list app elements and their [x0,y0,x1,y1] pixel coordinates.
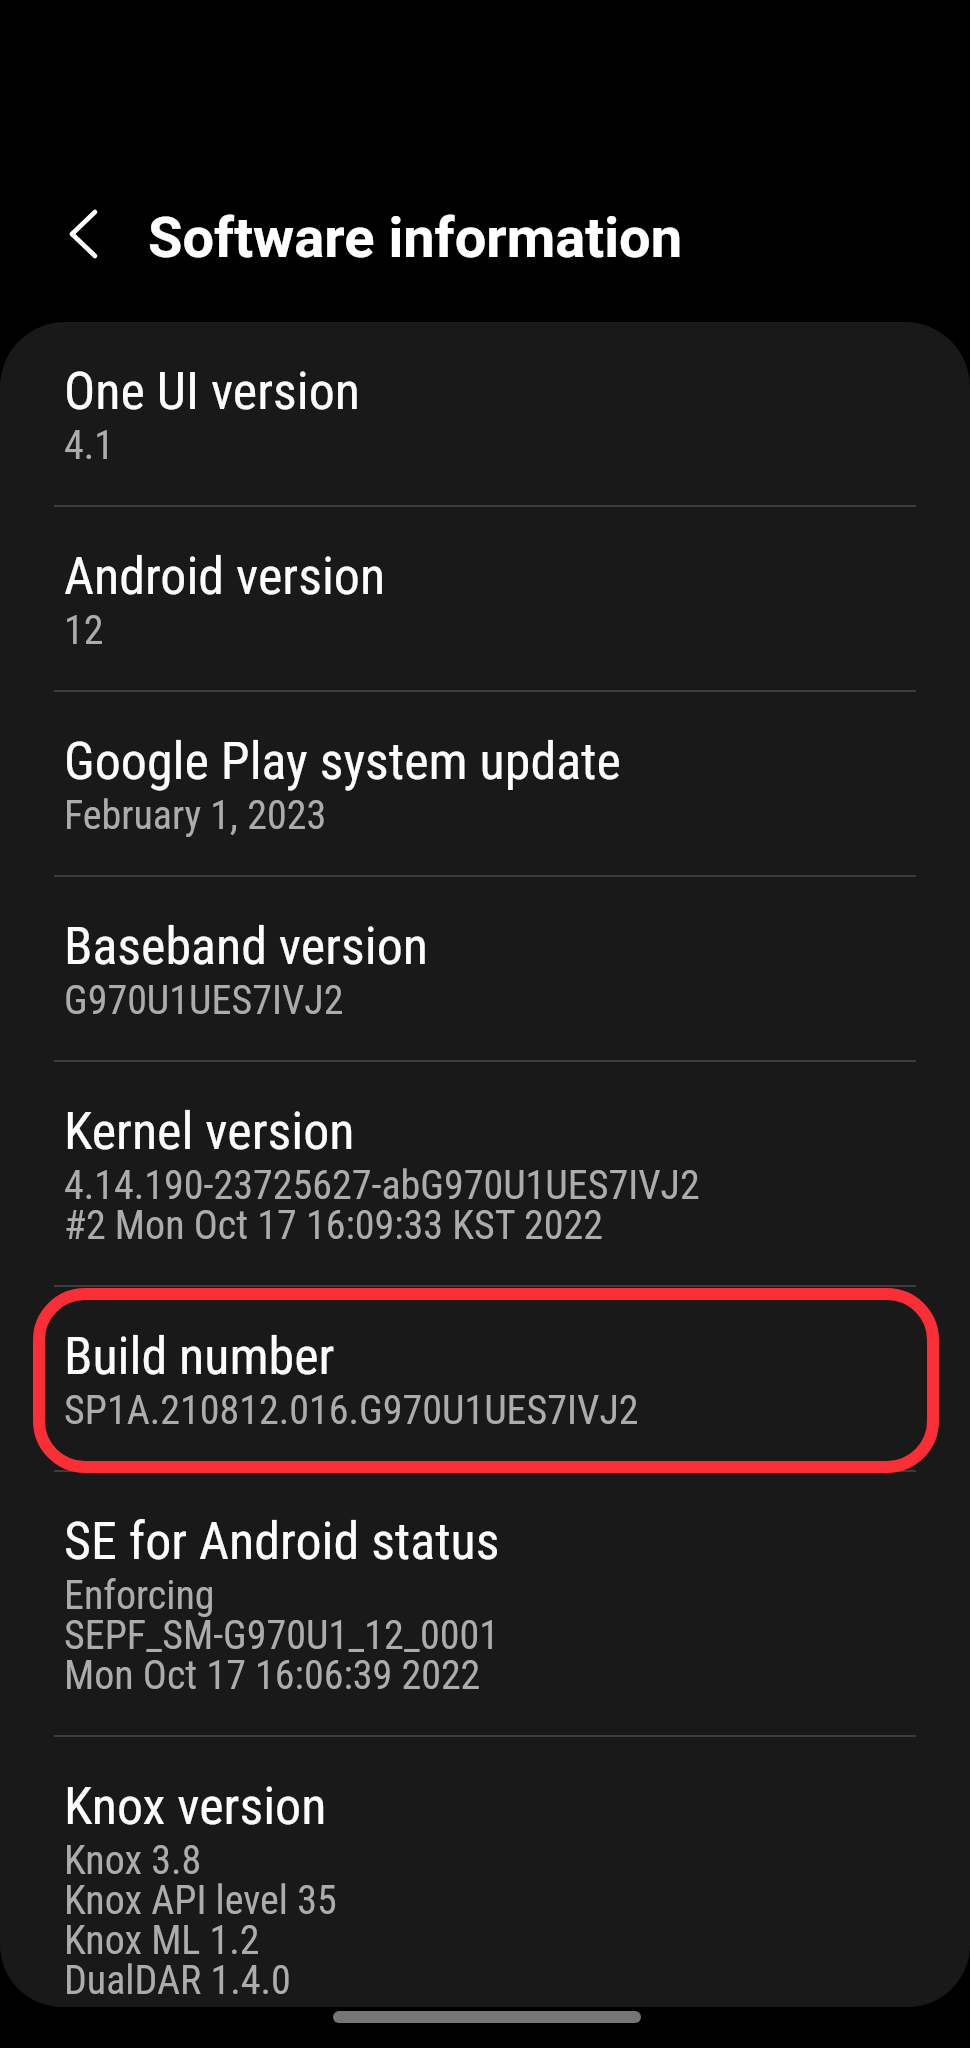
button[interactable]: Navigate up [62,203,126,265]
staticText: #2 Mon Oct 17 16:09:33 KST 2022 [64,1202,603,1249]
button[interactable]: Baseband version [0,877,970,1060]
staticText: 4.14.190-23725627-abG970U1UES7IVJ2 [64,1162,700,1209]
staticText: Baseband version [64,916,428,977]
staticText: G970U1UES7IVJ2 [64,977,344,1024]
button[interactable]: SE for Android status [0,1472,970,1735]
staticText: 4.1 [64,422,115,469]
staticText: One UI version [64,361,360,422]
button[interactable]: Kernel version [0,1062,970,1285]
staticText: Knox version [64,1776,327,1837]
staticText: Kernel version [64,1101,355,1162]
staticText: Enforcing [64,1572,215,1619]
button[interactable]: Google Play system update [0,692,970,875]
staticText: SE for Android status [64,1511,500,1572]
button[interactable]: Android version [0,507,970,690]
staticText: DualDAR 1.4.0 [64,1957,291,2004]
button[interactable]: Knox version [0,1737,970,2007]
staticText: Google Play system update [64,731,621,792]
staticText: Knox ML 1.2 [64,1917,260,1964]
staticText: February 1, 2023 [64,792,327,839]
staticText: Build number [64,1326,335,1387]
staticText: SP1A.210812.016.G970U1UES7IVJ2 [64,1387,639,1434]
staticText: Software information [148,205,683,271]
staticText: Android version [64,546,386,607]
button[interactable]: One UI version [0,322,970,505]
button[interactable]: Build number [0,1287,970,1470]
staticText: Knox 3.8 [64,1837,202,1884]
staticText: 12 [64,607,104,654]
staticText: Knox API level 35 [64,1877,337,1924]
staticText: Mon Oct 17 16:06:39 2022 [64,1652,481,1699]
staticText: SEPF_SM-G970U1_12_0001 [64,1612,500,1659]
